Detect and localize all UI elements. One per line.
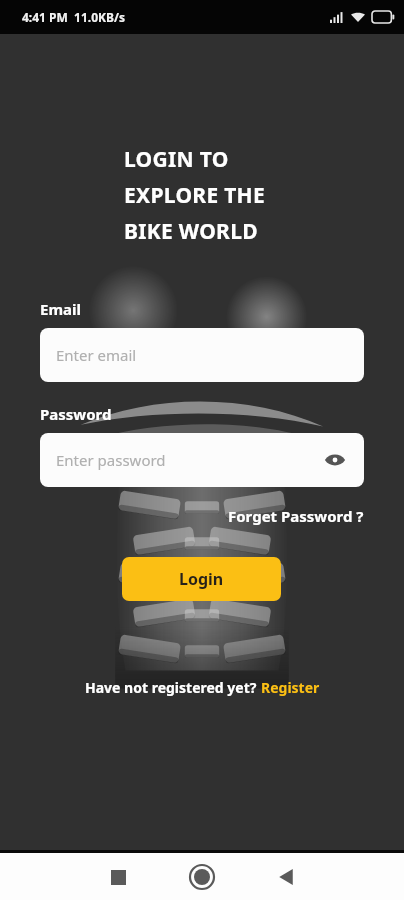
button[interactable]: Have not registered yet? <box>81 674 324 701</box>
button[interactable]: Login <box>122 557 281 601</box>
staticText: Enter password <box>56 450 166 470</box>
staticText: Login <box>179 568 224 590</box>
button[interactable]: Forget Password ? <box>226 503 366 529</box>
staticText: Enter email <box>56 345 137 365</box>
button[interactable]: Back <box>266 857 306 897</box>
button[interactable]: Home <box>180 855 224 899</box>
staticText: LOGIN TO <box>124 145 229 174</box>
button[interactable]: Show password <box>322 447 348 473</box>
staticText: Email <box>40 299 81 319</box>
button[interactable]: Enter password <box>40 433 364 487</box>
staticText: BIKE WORLD <box>124 217 258 246</box>
staticText: Have not registered yet? <box>85 678 261 697</box>
button[interactable]: Recent apps <box>98 857 138 897</box>
staticText: Register <box>261 678 320 697</box>
button[interactable]: Enter email <box>40 328 364 382</box>
staticText: 4:41 PM 11.0KB/s <box>22 9 126 25</box>
staticText: EXPLORE THE <box>124 181 266 210</box>
staticText: Forget Password ? <box>228 506 364 526</box>
staticText: Password <box>40 404 112 424</box>
